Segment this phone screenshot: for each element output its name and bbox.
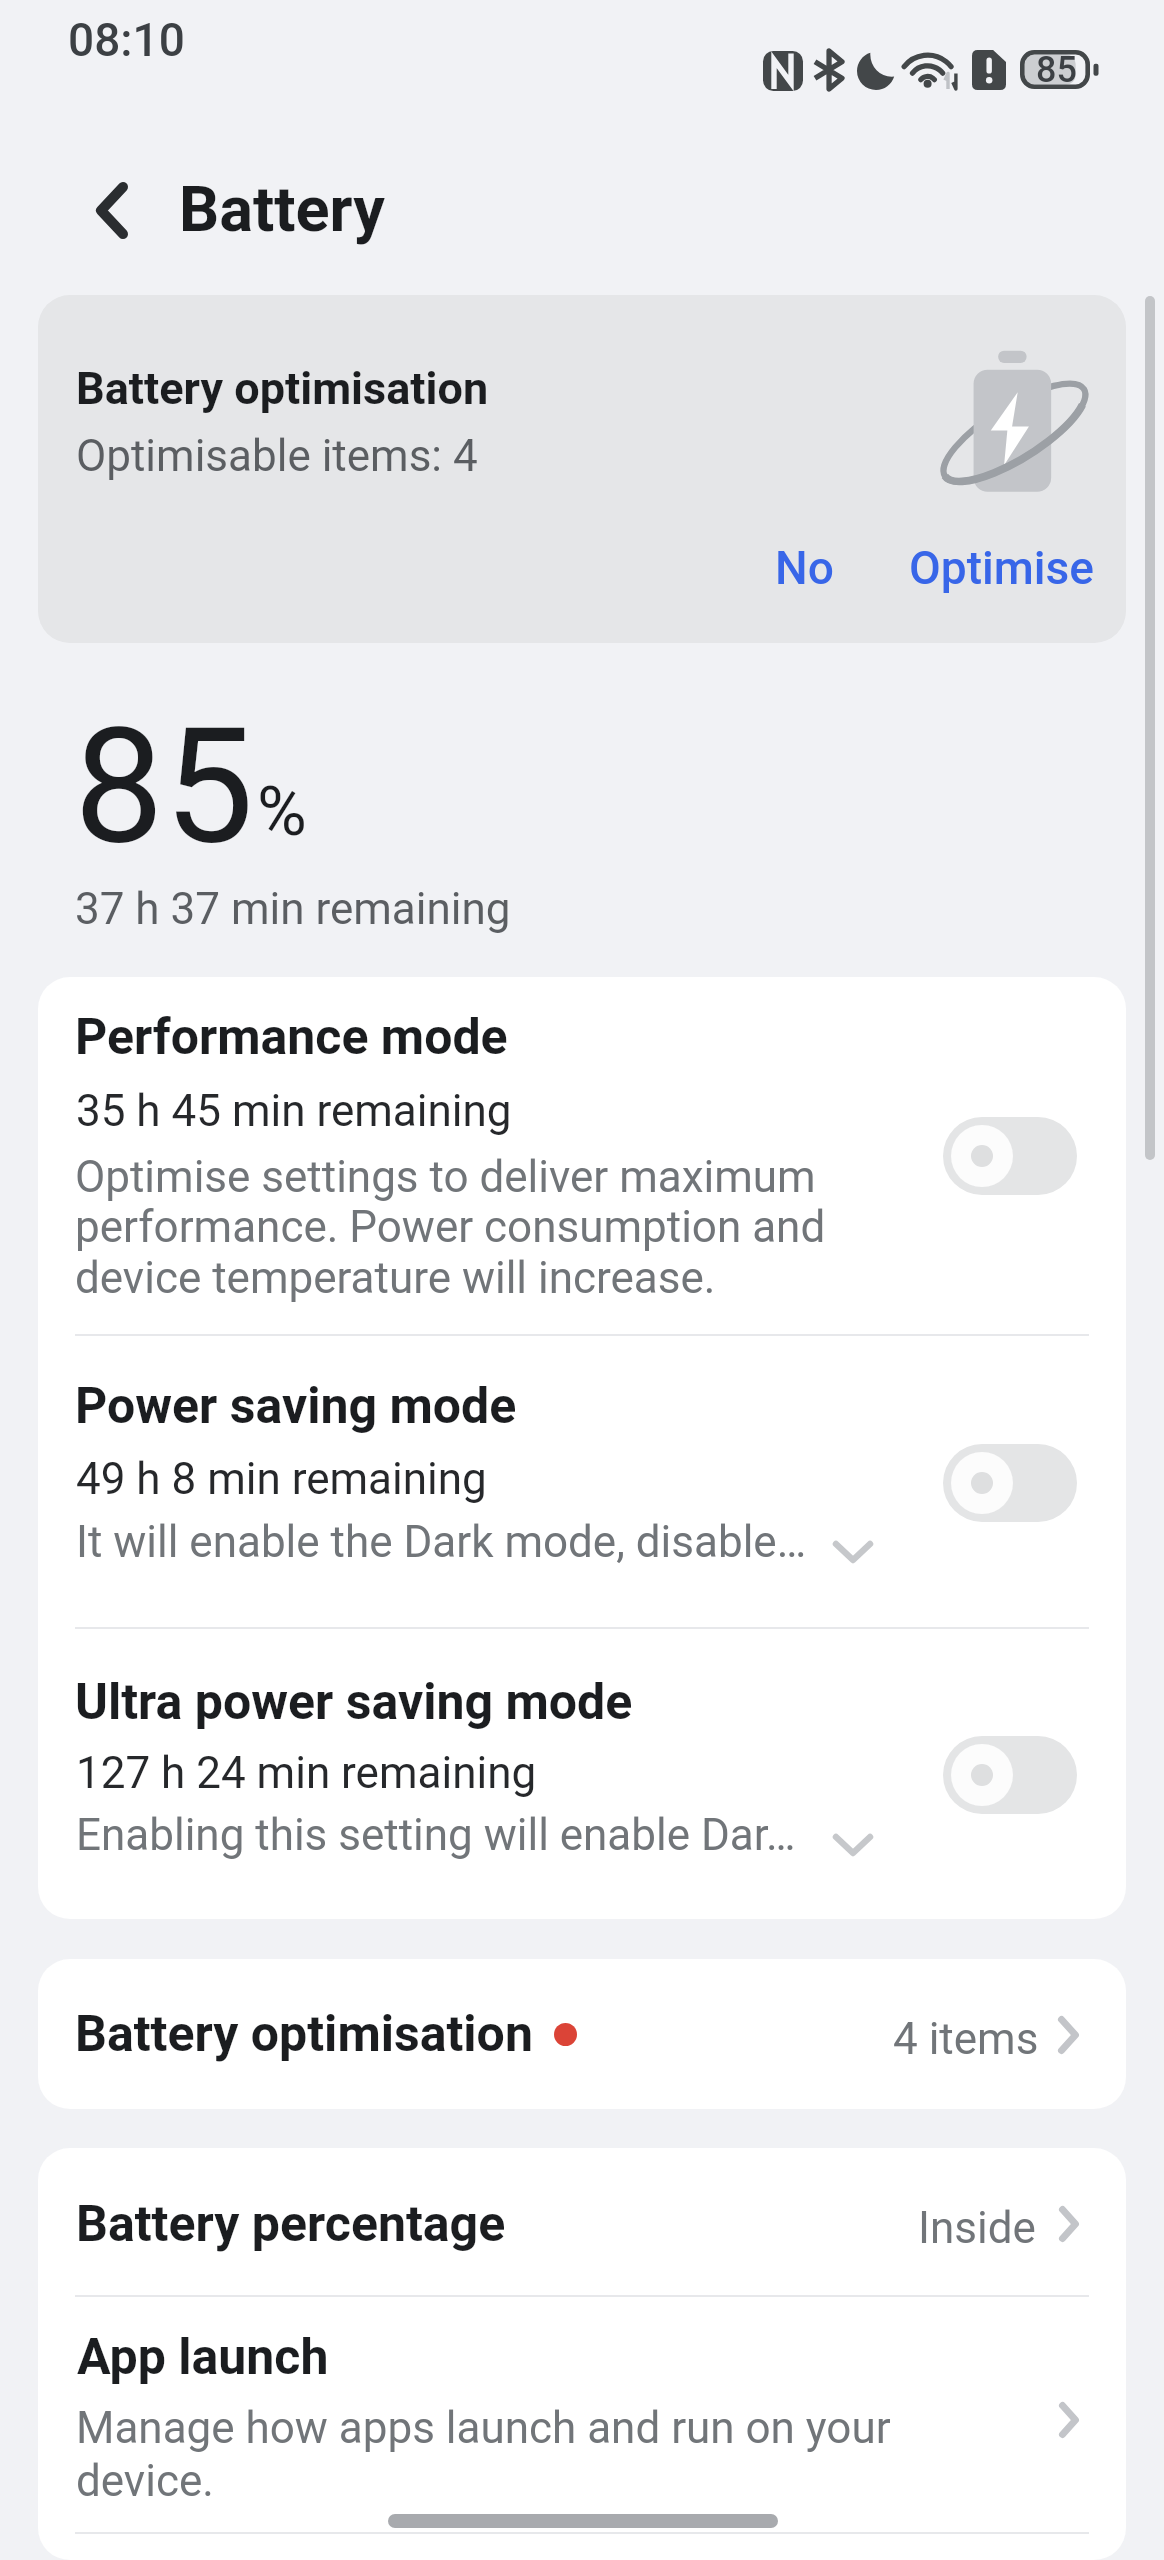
button[interactable]: Battery optimisation	[38, 1959, 1126, 2109]
staticText: Power saving mode	[75, 1377, 517, 1436]
staticText: 35 h 45 min remaining	[76, 1085, 512, 1137]
button[interactable]: Toggle	[943, 1117, 1077, 1195]
staticText: 4 items	[893, 2013, 1039, 2065]
staticText: Battery optimisation	[75, 2005, 533, 2064]
staticText: %	[257, 772, 307, 852]
staticText: Optimise	[909, 541, 1095, 595]
staticText: 49 h 8 min remaining	[76, 1453, 487, 1505]
button[interactable]: Battery percentage	[38, 2148, 1126, 2295]
button[interactable]: App launch	[38, 2297, 1126, 2532]
button[interactable]: Performance mode	[38, 977, 1126, 1334]
staticText: Performance mode	[75, 1008, 508, 1067]
staticText: 85	[74, 693, 254, 881]
staticText: Battery	[179, 173, 385, 247]
staticText: Enabling this setting will enable Dar…	[76, 1809, 796, 1861]
button[interactable]: Toggle	[943, 1736, 1077, 1814]
staticText: Manage how apps launch and run on your d…	[76, 2402, 891, 2507]
staticText: App launch	[77, 2328, 329, 2387]
button[interactable]: Battery optimisation	[38, 295, 1126, 643]
staticText: It will enable the Dark mode, disable…	[76, 1516, 807, 1568]
staticText: No	[775, 541, 834, 595]
staticText: Optimisable items: 4	[76, 430, 478, 482]
staticText: Battery optimisation	[76, 362, 489, 415]
staticText: Ultra power saving mode	[75, 1673, 633, 1732]
button[interactable]: Toggle	[943, 1444, 1077, 1522]
button[interactable]: No	[737, 526, 872, 610]
button[interactable]: Optimise	[871, 526, 1126, 610]
button[interactable]: Back	[64, 162, 160, 258]
staticText: Inside	[918, 2202, 1036, 2254]
staticText: 08:10	[68, 13, 185, 67]
staticText: 85	[1036, 49, 1077, 88]
button[interactable]: Power saving mode	[38, 1336, 1126, 1627]
staticText: Battery percentage	[76, 2195, 506, 2254]
staticText: 37 h 37 min remaining	[75, 883, 511, 935]
staticText: 127 h 24 min remaining	[76, 1747, 537, 1799]
staticText: Optimise settings to deliver maximum per…	[75, 1151, 826, 1304]
button[interactable]: Ultra power saving mode	[38, 1629, 1126, 1919]
